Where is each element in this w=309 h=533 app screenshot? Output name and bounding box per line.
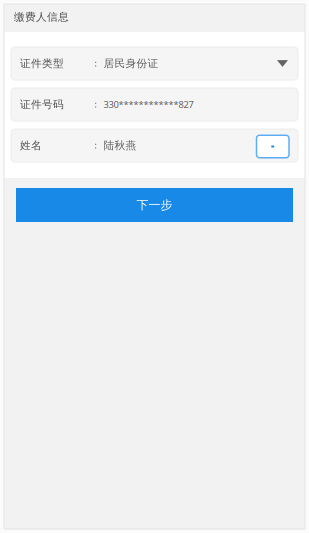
staticText: 330************827	[103, 98, 193, 111]
staticText: ：	[91, 58, 100, 69]
staticText: 缴费人信息	[14, 10, 69, 23]
button[interactable]: 下一步	[16, 188, 293, 222]
staticText: 证件类型	[20, 57, 64, 70]
staticText: 陆秋燕	[103, 139, 136, 152]
button[interactable]: 编辑姓名	[256, 133, 289, 158]
staticText: 姓名	[20, 139, 42, 152]
staticText: 居民身份证	[103, 57, 158, 70]
staticText: ：	[91, 140, 100, 151]
staticText: ：	[91, 99, 100, 110]
staticText: 下一步	[136, 198, 172, 212]
staticText: 证件号码	[20, 98, 64, 111]
